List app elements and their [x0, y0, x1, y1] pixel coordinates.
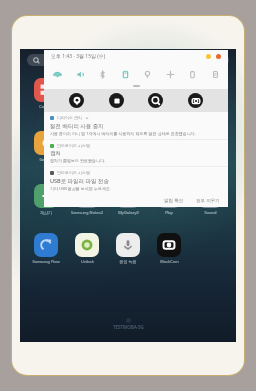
button[interactable]: Wi-Fi: [50, 67, 64, 81]
staticText: Samsung Notes2: [71, 210, 103, 215]
button[interactable]: Samsung Notes: [67, 78, 107, 109]
staticText: 안드로이드 시스템: [57, 143, 91, 148]
staticText: Samsung Flow: [32, 259, 60, 264]
button[interactable]: MyGalaxy: [108, 78, 148, 109]
staticText: 음성 녹음: [119, 259, 137, 264]
staticText: Unlock: [81, 259, 94, 264]
button[interactable]: Search: [27, 54, 229, 66]
staticText: USB로 파일러 파일 전송: [50, 177, 109, 185]
staticText: 전부 지우기: [196, 197, 220, 203]
button[interactable]: Brightness: [206, 54, 211, 59]
button[interactable]: Settings: [216, 54, 221, 59]
button[interactable]: 계산기: [26, 184, 66, 215]
button[interactable]: Play Store: [149, 78, 189, 109]
button[interactable]: Camera: [188, 93, 203, 108]
button[interactable]: Magnifier: [148, 93, 163, 108]
button[interactable]: Location: [69, 93, 84, 108]
button[interactable]: Power saving: [163, 67, 177, 81]
staticText: 사용 중이지 아니 앱 1개에서 배터리를 사용하지 않도록 절전 상태로 전환…: [50, 131, 196, 136]
button[interactable]: Samsung Notes2: [67, 184, 107, 215]
button[interactable]: Play: [149, 184, 189, 215]
staticText: MyGalaxy: [119, 104, 138, 109]
button[interactable]: Screen recorder: [109, 93, 124, 108]
button[interactable]: 안드로이드 시스템: [44, 167, 228, 194]
staticText: 캡처가 클립보드 완료됐습니다.: [50, 158, 106, 163]
button[interactable]: Contacts: [67, 131, 107, 162]
staticText: Gallery: [39, 157, 53, 162]
staticText: 기타 USB 옵션을 보려면 누르세요.: [50, 186, 111, 191]
button[interactable]: Gallery: [26, 131, 66, 162]
button[interactable]: MyGalaxy2: [108, 184, 148, 215]
button[interactable]: 음성 녹음: [108, 233, 148, 264]
button[interactable]: Flashlight: [140, 67, 154, 81]
staticText: 캡처: [50, 150, 61, 157]
staticText: Camera: [39, 104, 54, 109]
staticText: Samsung Notes: [72, 104, 102, 109]
button[interactable]: 디바이스 관리: [44, 112, 228, 139]
staticText: 알림 확인: [164, 197, 184, 203]
staticText: BlackCam: [160, 259, 179, 264]
staticText: Play: [165, 210, 173, 215]
button[interactable]: 안드로이드 시스템: [44, 140, 228, 166]
button[interactable]: Auto rotate: [118, 67, 132, 81]
staticText: 계산기: [40, 210, 52, 215]
button[interactable]: Samsung Flow: [26, 233, 66, 264]
staticText: Contacts: [79, 157, 96, 162]
staticText: TESTMOBA-5G: [113, 324, 144, 330]
button[interactable]: Bluetooth: [95, 67, 109, 81]
button[interactable]: Unlock: [67, 233, 107, 264]
button[interactable]: Sound: [190, 184, 230, 215]
button[interactable]: Internet: [149, 131, 189, 162]
staticText: 오후 1:43 · 3월 15일 (수): [51, 53, 106, 60]
button[interactable]: Camera: [26, 78, 66, 109]
staticText: 절전 배터리 사용 중지: [50, 122, 104, 130]
button[interactable]: Sound: [73, 67, 87, 81]
staticText: MyGalaxy2: [118, 210, 139, 215]
button[interactable]: BlackCam: [149, 233, 189, 264]
staticText: Sound: [204, 210, 217, 215]
button[interactable]: SIM: [208, 67, 222, 81]
staticText: Play Store: [160, 104, 179, 109]
button[interactable]: Messages: [108, 131, 148, 162]
button[interactable]: Phone: [190, 131, 230, 162]
button[interactable]: Clock: [190, 78, 230, 109]
staticText: 안드로이드 시스템: [57, 170, 91, 175]
staticText: 디바이스 관리: [57, 115, 83, 120]
button[interactable]: 알림 확인: [162, 196, 186, 204]
button[interactable]: Battery: [185, 67, 199, 81]
button[interactable]: 전부 지우기: [194, 196, 222, 204]
